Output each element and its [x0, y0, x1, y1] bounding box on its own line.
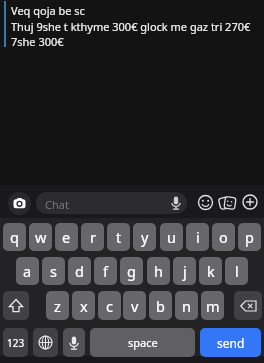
button[interactable]: u — [160, 223, 183, 251]
staticText: m — [206, 296, 220, 316]
button[interactable]: send — [200, 328, 261, 357]
staticText: 123 — [7, 336, 25, 350]
button[interactable]: i — [186, 223, 209, 251]
staticText: v — [131, 296, 139, 316]
button[interactable]: p — [238, 223, 261, 251]
button[interactable]: z — [46, 291, 69, 320]
staticText: h — [154, 261, 163, 281]
staticText: g — [127, 261, 136, 281]
button[interactable]: f — [94, 257, 117, 285]
button[interactable]: l — [225, 257, 248, 285]
staticText: i — [196, 227, 200, 247]
button[interactable] — [197, 194, 214, 211]
button[interactable]: q — [3, 223, 26, 251]
button[interactable]: y — [133, 223, 156, 251]
staticText: t — [116, 227, 122, 247]
button[interactable]: space — [90, 328, 195, 357]
staticText: 7she 300€ — [11, 34, 64, 49]
button[interactable]: s — [42, 257, 65, 285]
button[interactable]: a — [16, 257, 39, 285]
button[interactable]: n — [175, 291, 198, 320]
staticText: e — [62, 227, 71, 247]
staticText: o — [219, 227, 228, 247]
staticText: y — [141, 227, 149, 247]
button[interactable]: c — [98, 291, 121, 320]
button[interactable] — [8, 192, 31, 215]
staticText: a — [23, 261, 32, 281]
staticText: d — [75, 261, 84, 281]
button[interactable]: e — [55, 223, 78, 251]
button[interactable]: r — [81, 223, 104, 251]
button[interactable]: j — [173, 257, 196, 285]
button[interactable] — [33, 328, 58, 357]
button[interactable]: d — [68, 257, 91, 285]
button[interactable]: 123 — [3, 328, 28, 357]
button[interactable]: m — [201, 291, 224, 320]
staticText: p — [245, 227, 254, 247]
staticText: b — [156, 296, 165, 316]
button[interactable]: x — [72, 291, 95, 320]
button[interactable]: k — [199, 257, 222, 285]
staticText: Thuj 9she t kthyme 300€ glock me gaz tri… — [11, 19, 251, 34]
staticText: l — [235, 261, 239, 281]
staticText: w — [35, 227, 47, 247]
button[interactable] — [3, 291, 29, 320]
staticText: q — [10, 227, 19, 247]
staticText: Veq qoja be sc — [11, 3, 85, 18]
staticText: x — [80, 296, 88, 316]
staticText: z — [54, 296, 61, 316]
staticText: r — [90, 227, 96, 247]
staticText: s — [50, 261, 57, 281]
staticText: c — [106, 296, 113, 316]
staticText: u — [167, 227, 176, 247]
button[interactable] — [219, 194, 237, 212]
staticText: f — [103, 261, 108, 281]
button[interactable]: o — [212, 223, 235, 251]
button[interactable]: h — [147, 257, 170, 285]
staticText: send — [217, 335, 245, 351]
staticText: Chat — [45, 197, 69, 212]
button[interactable]: t — [107, 223, 130, 251]
staticText: j — [183, 261, 187, 281]
button[interactable]: Chat — [36, 192, 187, 214]
button[interactable] — [234, 291, 262, 320]
staticText: n — [182, 296, 191, 316]
staticText: k — [207, 261, 215, 281]
button[interactable] — [63, 328, 85, 357]
button[interactable]: b — [149, 291, 172, 320]
button[interactable]: w — [29, 223, 52, 251]
staticText: space — [128, 335, 158, 350]
button[interactable] — [242, 194, 258, 210]
button[interactable]: v — [123, 291, 146, 320]
button[interactable]: g — [120, 257, 143, 285]
